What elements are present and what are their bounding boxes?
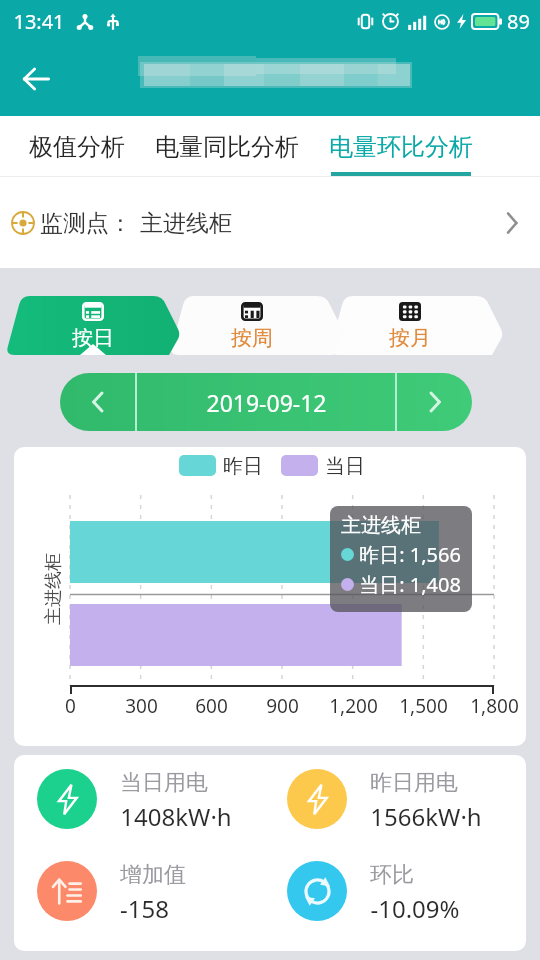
staticText: 电量同比分析 [155, 132, 299, 162]
staticText: 主进线柜 [341, 513, 421, 538]
staticText: 主进线柜 [140, 209, 232, 238]
button[interactable]: 当日用电 [37, 769, 277, 829]
button[interactable]: 环比 [287, 861, 526, 921]
staticText: 1,200 [329, 693, 378, 719]
staticText: -158 [120, 892, 169, 921]
staticText: 环比 [370, 861, 414, 889]
button[interactable]: Previous day [60, 373, 135, 431]
staticText: 当日 [325, 454, 365, 476]
staticText: 昨日 [223, 454, 263, 476]
button[interactable]: 电量环比分析 [321, 116, 481, 177]
staticText: 600 [195, 693, 228, 719]
staticText: 按周 [231, 325, 273, 351]
button[interactable]: 昨日用电 [287, 769, 526, 829]
staticText: 900 [266, 693, 299, 719]
button[interactable]: 增加值 [37, 861, 277, 921]
button[interactable]: 2019-09-12 [137, 373, 395, 431]
button[interactable]: Next day [397, 373, 472, 431]
button[interactable]: 按周 [202, 302, 302, 355]
staticText: 1,500 [399, 693, 448, 719]
button[interactable]: 按月 [360, 302, 460, 355]
staticText: 当日: 1,408 [359, 571, 461, 598]
staticText: 1566kW·h [370, 800, 482, 829]
staticText: 按月 [389, 325, 431, 351]
staticText: 昨日: 1,566 [359, 541, 461, 568]
button[interactable]: 按日 [43, 302, 143, 355]
staticText: 1408kW·h [120, 800, 232, 829]
staticText: 主进线柜 [42, 553, 65, 625]
staticText: 电量环比分析 [329, 132, 473, 162]
staticText: 300 [125, 693, 158, 719]
staticText: 监测点： [40, 209, 132, 238]
staticText: -10.09% [370, 892, 460, 921]
staticText: 1,800 [470, 693, 519, 719]
button[interactable]: Back [10, 53, 62, 105]
staticText: 极值分析 [29, 132, 125, 162]
staticText: 13:41 [13, 8, 65, 35]
button[interactable]: 极值分析 [17, 116, 136, 177]
staticText: 当日用电 [120, 769, 208, 797]
staticText: 0 [65, 693, 76, 719]
staticText: 增加值 [120, 861, 186, 889]
staticText: 89 [507, 8, 530, 35]
staticText: 昨日用电 [370, 769, 458, 797]
button[interactable]: 电量同比分析 [147, 116, 307, 177]
staticText: 2019-09-12 [206, 387, 327, 418]
button[interactable]: 监测点： [0, 178, 540, 268]
staticText: 按日 [72, 325, 114, 351]
